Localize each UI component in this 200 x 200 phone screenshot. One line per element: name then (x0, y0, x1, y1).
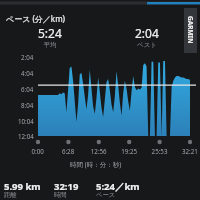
button[interactable]: Pace chart activity summary (0, 0, 200, 200)
